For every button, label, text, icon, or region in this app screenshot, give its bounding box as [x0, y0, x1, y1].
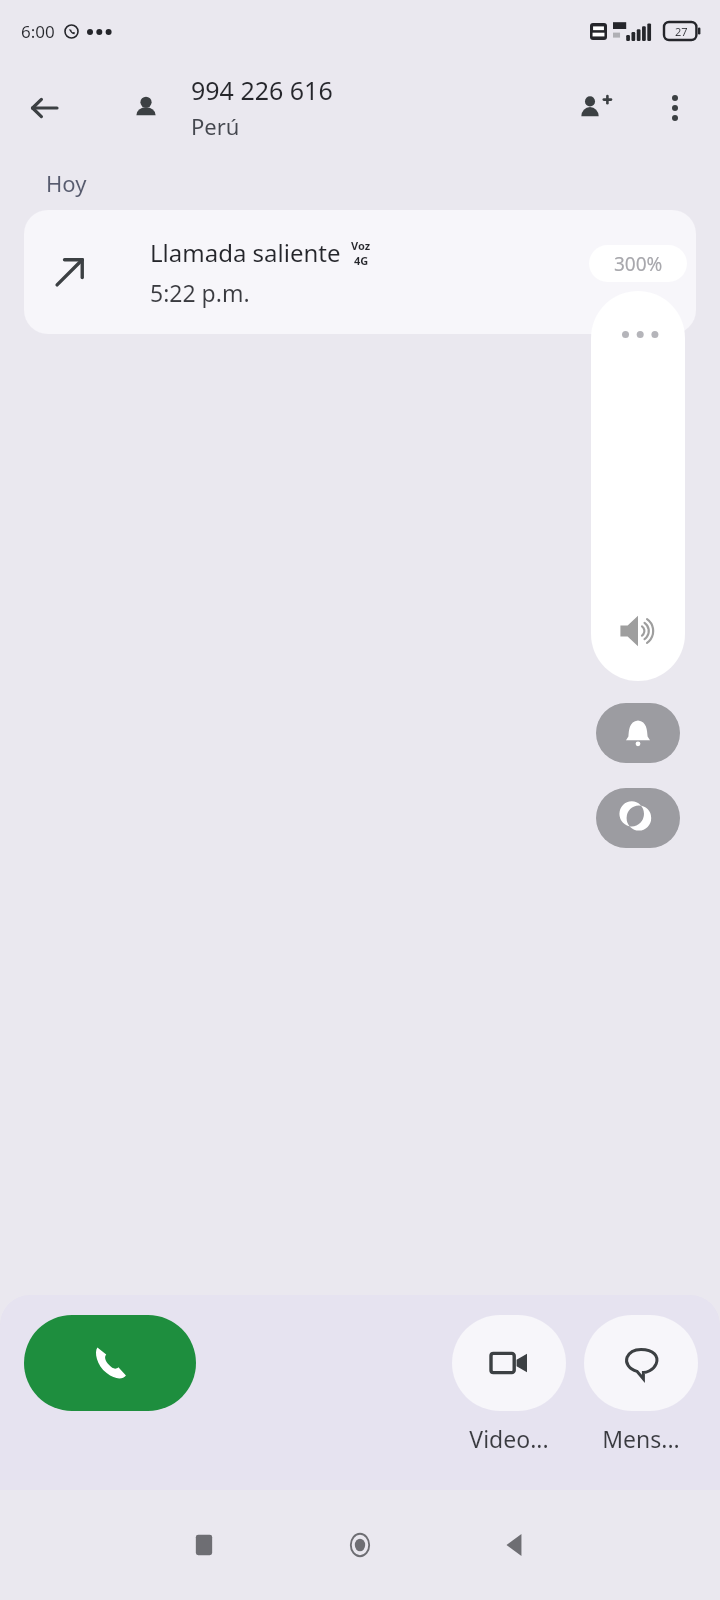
- button[interactable]: Back: [485, 1514, 547, 1576]
- button[interactable]: Llamada saliente: [24, 210, 696, 334]
- staticText: Mens...: [602, 1423, 680, 1454]
- button[interactable]: 300%: [589, 245, 687, 282]
- staticText: Hoy: [46, 168, 87, 198]
- other: Message: [584, 1315, 698, 1411]
- button[interactable]: Do not disturb: [596, 788, 680, 848]
- staticText: Perú: [191, 111, 240, 141]
- button[interactable]: Recent apps: [173, 1514, 235, 1576]
- staticText: 6:00: [21, 20, 55, 43]
- other: Video call: [452, 1315, 566, 1411]
- button[interactable]: Video call: [452, 1315, 566, 1454]
- staticText: 300%: [614, 251, 663, 277]
- staticText: 27: [675, 24, 688, 39]
- staticText: Voz: [351, 238, 371, 253]
- staticText: 5:22 p.m.: [150, 277, 250, 308]
- button[interactable]: Message: [584, 1315, 698, 1454]
- button[interactable]: Back: [16, 80, 72, 136]
- staticText: Video...: [469, 1423, 549, 1454]
- button[interactable]: Ring: [596, 703, 680, 763]
- button[interactable]: Home: [329, 1514, 391, 1576]
- button[interactable]: More options: [648, 81, 702, 135]
- staticText: 4G: [354, 253, 369, 268]
- staticText: 994 226 616: [191, 73, 333, 107]
- button[interactable]: Call: [24, 1315, 196, 1411]
- staticText: Llamada saliente: [150, 236, 341, 269]
- button[interactable]: [591, 291, 685, 681]
- button[interactable]: Add contact: [568, 80, 624, 136]
